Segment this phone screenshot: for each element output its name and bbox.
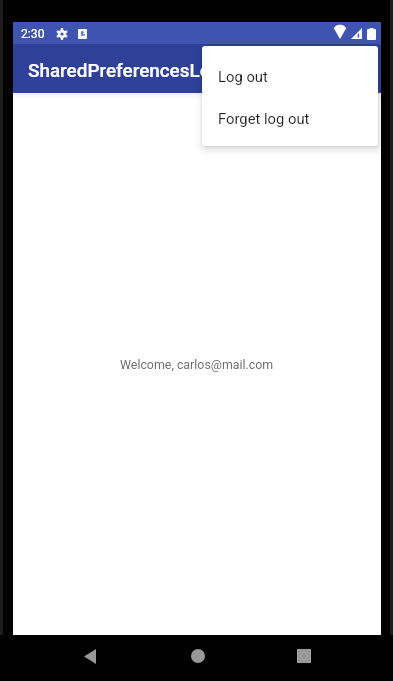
button[interactable]: Forget log out: [202, 97, 378, 139]
button[interactable]: Home: [175, 633, 221, 679]
button[interactable]: Back: [67, 633, 113, 679]
staticText: Forget log out: [218, 110, 310, 127]
button[interactable]: Recents: [281, 633, 327, 679]
staticText: Welcome, carlos@mail.com: [120, 357, 274, 372]
staticText: 2:30: [21, 27, 45, 41]
button[interactable]: Log out: [202, 55, 378, 97]
staticText: SharedPreferencesLogin: [28, 59, 237, 81]
staticText: Log out: [218, 68, 268, 85]
